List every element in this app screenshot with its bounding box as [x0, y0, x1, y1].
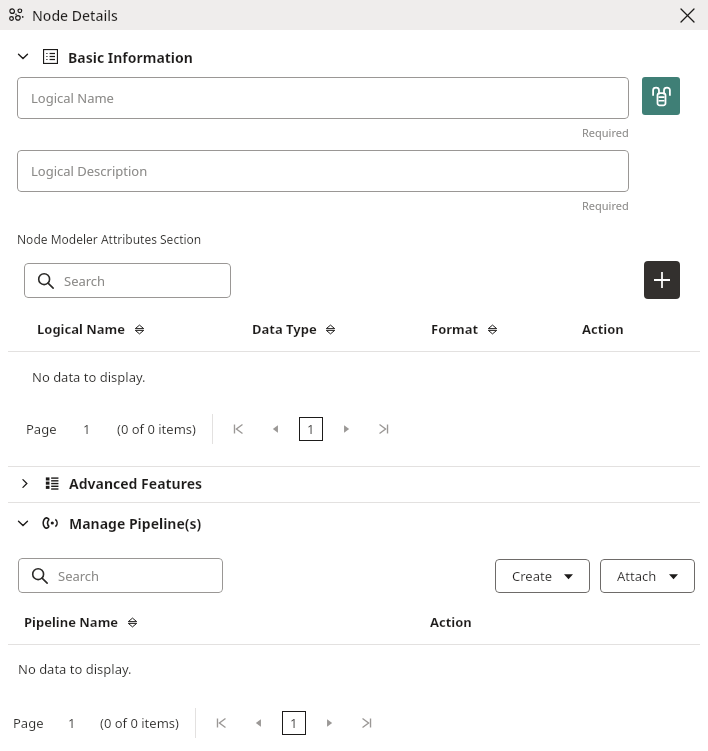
button[interactable]: Add attribute — [644, 261, 680, 299]
staticText: Advanced Features — [69, 474, 203, 493]
staticText: Format — [431, 320, 479, 338]
staticText: Basic Information — [68, 48, 193, 64]
button[interactable]: Logical Name — [17, 77, 629, 119]
staticText: (0 of 0 items) — [117, 420, 196, 438]
staticText: Action — [430, 613, 472, 631]
staticText: Search — [64, 272, 106, 290]
staticText: Logical Name — [31, 89, 114, 107]
staticText: Required — [582, 198, 629, 213]
button[interactable]: Next page — [316, 710, 342, 736]
button[interactable]: Create — [495, 559, 590, 593]
staticText: Create — [512, 567, 552, 585]
button[interactable]: Previous page — [263, 416, 289, 442]
staticText: Pipeline Name — [24, 613, 119, 631]
button[interactable]: Attach — [600, 559, 695, 593]
button[interactable]: First page — [208, 710, 234, 736]
button[interactable]: Search — [24, 263, 231, 298]
button[interactable]: Logical Description — [17, 150, 629, 192]
staticText: 1 — [307, 420, 315, 438]
button[interactable]: Advanced Features — [0, 467, 708, 499]
staticText: 1 — [290, 714, 298, 732]
button[interactable]: Close — [674, 2, 700, 28]
staticText: Attach — [617, 567, 657, 585]
staticText: Page — [13, 714, 44, 732]
staticText: Required — [582, 125, 629, 140]
staticText: Data Type — [252, 320, 317, 338]
staticText: 1 — [83, 420, 91, 438]
button[interactable]: Search — [18, 558, 223, 593]
button[interactable]: 1 — [282, 711, 306, 735]
staticText: Search — [58, 567, 100, 585]
staticText: Logical Name — [37, 320, 126, 338]
staticText: 1 — [68, 714, 76, 732]
button[interactable]: Last page — [371, 416, 397, 442]
button[interactable]: Previous page — [246, 710, 272, 736]
staticText: Page — [26, 420, 57, 438]
button[interactable]: 1 — [299, 417, 323, 441]
button[interactable]: Next page — [333, 416, 359, 442]
button[interactable]: First page — [225, 416, 251, 442]
staticText: No data to display. — [18, 660, 132, 678]
staticText: Logical Description — [31, 162, 148, 180]
button[interactable]: Last page — [354, 710, 380, 736]
staticText: Node Details — [32, 6, 118, 25]
button[interactable]: Manage Pipeline(s) — [0, 503, 708, 543]
button[interactable]: Basic Information — [0, 48, 708, 64]
staticText: Action — [582, 320, 624, 338]
staticText: Node Modeler Attributes Section — [17, 231, 202, 247]
staticText: (0 of 0 items) — [100, 714, 179, 732]
button[interactable]: Select data entity — [642, 77, 680, 115]
staticText: Manage Pipeline(s) — [69, 514, 202, 533]
staticText: No data to display. — [32, 368, 146, 386]
